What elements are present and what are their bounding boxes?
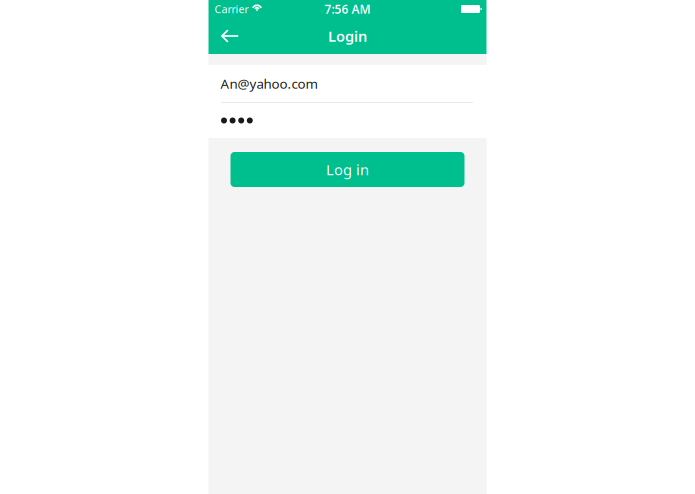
staticText: An@yahoo.com [220,75,317,92]
staticText: 7:56 AM [324,1,370,17]
button[interactable]: Password [208,103,486,138]
button[interactable]: An@yahoo.com [208,65,486,102]
staticText: Carrier [214,2,248,16]
button[interactable]: Back [214,18,244,54]
staticText: Log in [326,160,369,179]
staticText: Login [328,26,367,46]
button[interactable]: Log in [230,152,464,187]
